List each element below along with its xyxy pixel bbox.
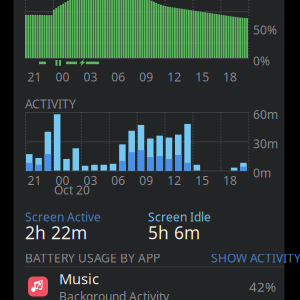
staticText: 09 bbox=[139, 172, 153, 188]
staticText: 42% bbox=[249, 278, 276, 295]
staticText: 03 bbox=[83, 69, 97, 85]
staticText: 50% bbox=[253, 22, 277, 38]
staticText: 06 bbox=[111, 69, 125, 85]
staticText: 18 bbox=[223, 69, 237, 85]
staticText: 12 bbox=[167, 69, 181, 85]
staticText: 5h 6m bbox=[148, 221, 200, 244]
staticText: 15 bbox=[195, 69, 209, 85]
staticText: ACTIVITY bbox=[25, 96, 76, 112]
staticText: 0% bbox=[253, 53, 270, 69]
button[interactable]: Music bbox=[0, 270, 300, 300]
button[interactable]: SHOW ACTIVITY bbox=[207, 247, 300, 269]
staticText: Background Activity bbox=[59, 288, 169, 300]
staticText: 00 bbox=[55, 69, 69, 85]
staticText: 60m bbox=[253, 106, 278, 122]
staticText: 2h 22m bbox=[25, 221, 87, 244]
staticText: 03 bbox=[83, 172, 97, 188]
staticText: 00 bbox=[55, 172, 69, 188]
staticText: 21 bbox=[27, 172, 41, 188]
staticText: Oct 20 bbox=[54, 182, 90, 198]
staticText: 09 bbox=[139, 69, 153, 85]
staticText: BATTERY USAGE BY APP bbox=[25, 250, 160, 266]
staticText: SHOW ACTIVITY bbox=[211, 250, 300, 266]
staticText: Music bbox=[59, 269, 99, 288]
staticText: 18 bbox=[223, 172, 237, 188]
staticText: 06 bbox=[111, 172, 125, 188]
staticText: Screen Active bbox=[25, 209, 101, 225]
staticText: 12 bbox=[167, 172, 181, 188]
staticText: 30m bbox=[253, 136, 278, 152]
staticText: 15 bbox=[195, 172, 209, 188]
staticText: 0m bbox=[253, 165, 271, 181]
staticText: Screen Idle bbox=[148, 209, 211, 225]
staticText: 21 bbox=[27, 69, 41, 85]
